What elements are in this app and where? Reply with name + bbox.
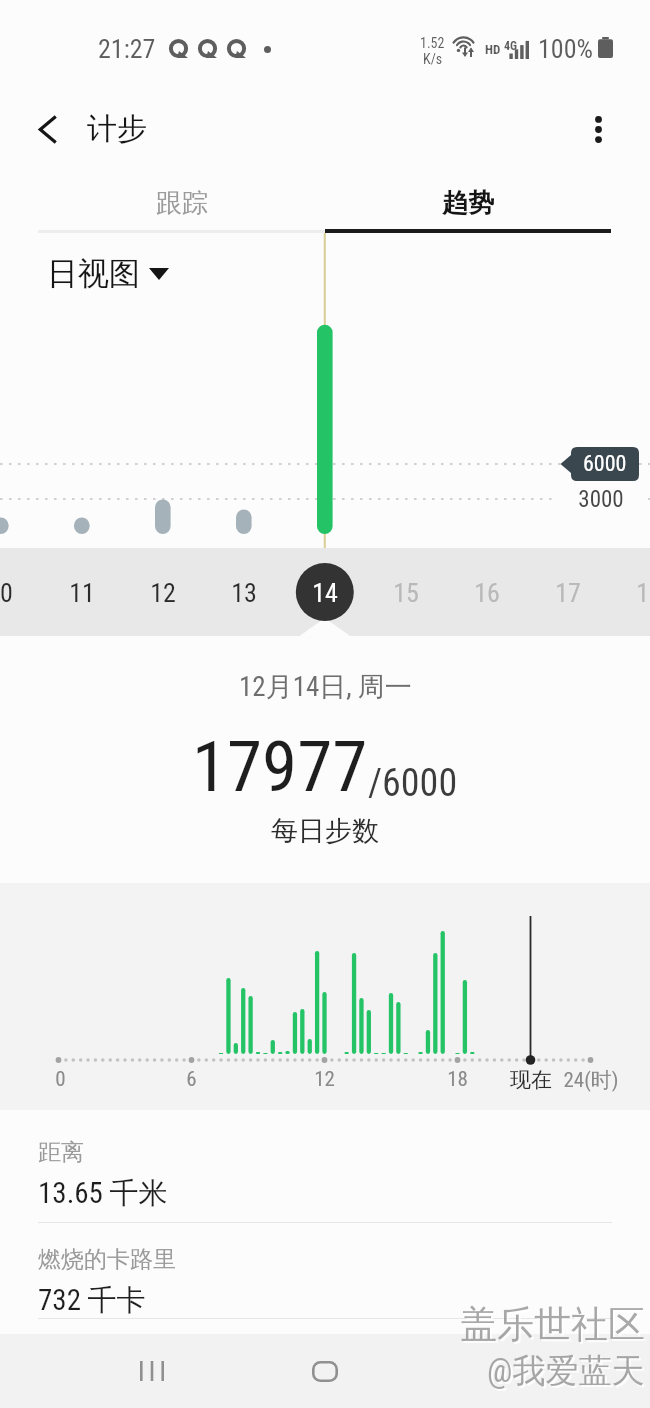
button[interactable]: 燃烧的卡路里 (0, 1235, 650, 1329)
staticText: 13 (231, 578, 257, 608)
staticText: 距离 (38, 1138, 84, 1167)
staticText: 18 (636, 578, 650, 608)
button[interactable]: Home (295, 1341, 355, 1401)
staticText: 14 (312, 578, 338, 608)
button[interactable]: 跟踪 (38, 170, 325, 236)
staticText: 11 (69, 578, 95, 608)
staticText: 732 千卡 (38, 1282, 146, 1319)
staticText: HD (485, 42, 501, 57)
staticText: 24(时) (563, 1067, 619, 1093)
staticText: 盖乐世社区 (460, 1301, 645, 1348)
staticText: 100% (538, 34, 593, 64)
staticText: 现在 (510, 1067, 552, 1093)
button[interactable]: 日视图 (47, 254, 169, 293)
button[interactable]: 距离 (0, 1128, 650, 1222)
staticText: 21:27 (98, 34, 156, 64)
staticText: 每日步数 (271, 814, 379, 848)
staticText: @我爱蓝天 (487, 1350, 645, 1392)
staticText: 跟踪 (156, 187, 208, 220)
staticText: 18 (447, 1067, 468, 1092)
staticText: 10 (0, 578, 13, 608)
staticText: 15 (393, 578, 419, 608)
button[interactable]: 趋势 (325, 170, 611, 236)
button[interactable]: Back (18, 99, 78, 159)
staticText: 16 (474, 578, 500, 608)
staticText: 12 (150, 578, 176, 608)
staticText: 17977 (192, 725, 368, 808)
staticText: 日视图 (47, 254, 140, 293)
staticText: 燃烧的卡路里 (38, 1245, 176, 1274)
staticText: 4G (504, 39, 518, 53)
staticText: 计步 (87, 110, 147, 148)
staticText: 12 (314, 1067, 335, 1092)
staticText: K/s (423, 51, 443, 67)
staticText: 1.52 (420, 35, 445, 51)
staticText: 6000 (583, 451, 627, 477)
staticText: @我爱蓝天 (489, 1352, 647, 1394)
staticText: 趋势 (442, 187, 494, 220)
staticText: 0 (55, 1067, 66, 1092)
staticText: 3000 (578, 486, 624, 513)
staticText: 12月14日, 周一 (239, 670, 412, 704)
staticText: 17 (555, 578, 581, 608)
staticText: 盖乐世社区 (462, 1303, 647, 1350)
button[interactable]: Recents (122, 1341, 182, 1401)
button[interactable]: More options (568, 99, 628, 159)
staticText: /6000 (368, 761, 458, 806)
staticText: 13.65 千米 (38, 1175, 168, 1212)
staticText: 6 (186, 1067, 197, 1092)
